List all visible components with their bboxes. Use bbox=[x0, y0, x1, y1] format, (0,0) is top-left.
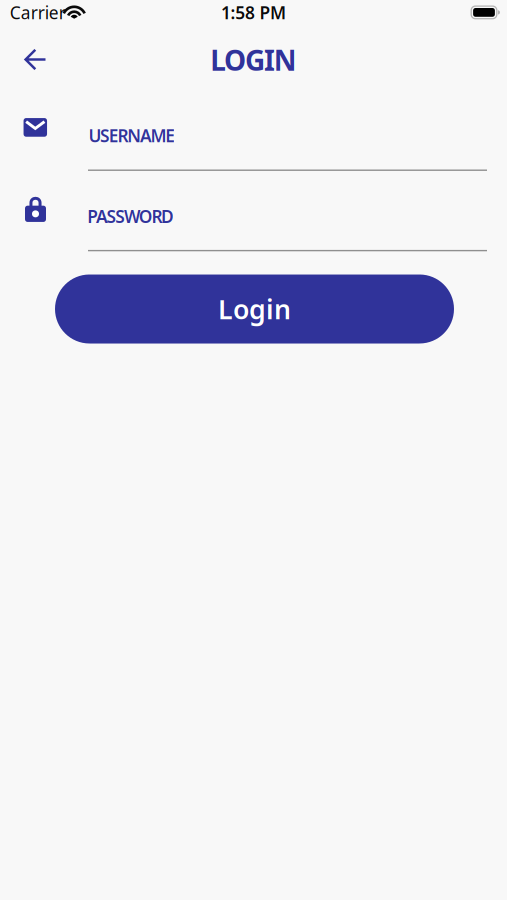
button[interactable]: Login bbox=[55, 274, 454, 343]
staticText: LOGIN bbox=[210, 41, 297, 79]
button[interactable]: Back bbox=[15, 41, 55, 77]
staticText: Login bbox=[218, 291, 291, 327]
staticText: PASSWORD bbox=[87, 205, 174, 228]
staticText: 1:58 PM bbox=[221, 1, 286, 24]
staticText: USERNAME bbox=[88, 124, 175, 147]
staticText: Carrier bbox=[10, 1, 66, 24]
